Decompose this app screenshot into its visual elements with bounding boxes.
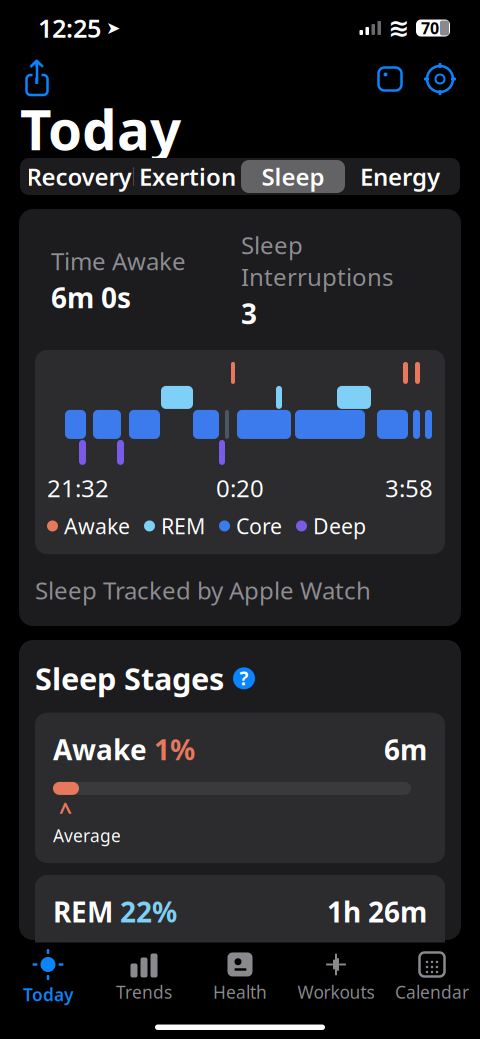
staticText: REM <box>161 512 205 540</box>
staticText: 3:58 <box>385 472 433 504</box>
staticText: Health <box>213 980 267 1003</box>
staticText: REM <box>53 893 113 930</box>
button[interactable]: Health <box>192 950 288 1004</box>
staticText: Recovery <box>26 161 131 192</box>
staticText: ≋ <box>388 14 409 42</box>
staticText: Sleep Tracked by Apple Watch <box>35 574 371 606</box>
button[interactable]: Recovery <box>25 159 133 194</box>
staticText: Today <box>23 983 73 1006</box>
staticText: 21:32 <box>47 472 109 504</box>
staticText: Time Awake <box>51 245 186 277</box>
staticText: ➤ <box>106 18 121 38</box>
staticText: Exertion <box>139 161 236 192</box>
button[interactable]: Calendar <box>384 950 480 1004</box>
staticText: Sleep Stages <box>35 658 224 699</box>
staticText: Sleep Interruptions <box>241 229 393 293</box>
staticText: Deep <box>313 512 366 540</box>
staticText: Calendar <box>395 980 469 1003</box>
button[interactable]: Sleep <box>241 160 345 193</box>
button[interactable]: Energy <box>345 159 455 194</box>
button[interactable]: About Sleep Stages <box>233 666 255 691</box>
staticText: 1h 26m <box>327 893 427 930</box>
button[interactable]: Settings <box>424 63 456 95</box>
staticText: 22% <box>113 893 177 930</box>
staticText: Core <box>236 512 282 540</box>
button[interactable]: Awake <box>35 713 445 863</box>
staticText: Average <box>53 824 121 847</box>
staticText: Sleep <box>261 161 324 192</box>
staticText: Today <box>20 93 181 165</box>
staticText: 6m 0s <box>51 279 131 316</box>
button[interactable]: Exertion <box>134 159 241 194</box>
staticText: Energy <box>360 161 440 192</box>
staticText: Trends <box>116 980 172 1003</box>
staticText: ^ <box>59 796 72 826</box>
staticText: 6m <box>384 731 427 768</box>
button[interactable]: Tags <box>374 63 406 95</box>
button[interactable]: Today <box>0 950 96 1004</box>
staticText: 1% <box>147 731 195 768</box>
staticText: 0:20 <box>216 472 264 504</box>
staticText: 3 <box>241 295 257 332</box>
staticText: Workouts <box>297 980 374 1003</box>
staticText: Awake <box>53 731 147 768</box>
staticText: 70 <box>421 17 439 39</box>
button[interactable]: Trends <box>96 950 192 1004</box>
staticText: Awake <box>64 512 130 540</box>
staticText: ? <box>239 666 248 691</box>
button[interactable]: REM <box>35 875 445 971</box>
button[interactable]: Share <box>22 62 52 96</box>
staticText: 12:25 <box>38 11 101 45</box>
button[interactable]: Workouts <box>288 950 384 1004</box>
staticText: ↑ <box>23 54 51 91</box>
